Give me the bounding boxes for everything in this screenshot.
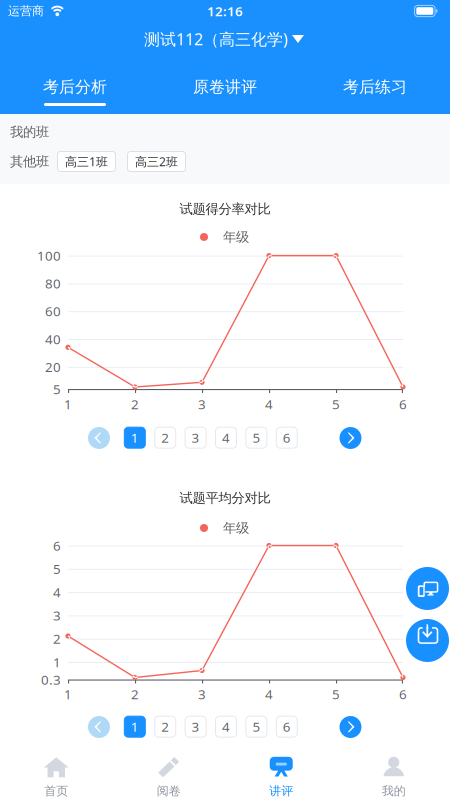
staticText: 4: [265, 395, 273, 413]
button[interactable]: 6: [276, 716, 297, 737]
button[interactable]: 上一页: [88, 716, 110, 738]
staticText: 4: [222, 429, 230, 446]
button[interactable]: 高三2班: [127, 151, 185, 171]
staticText: 1: [131, 429, 139, 446]
staticText: 1: [53, 653, 61, 671]
staticText: 2: [161, 718, 169, 735]
button[interactable]: 5: [246, 716, 267, 737]
staticText: 0.3: [41, 671, 61, 688]
staticText: 高三1班: [65, 153, 108, 169]
staticText: 3: [192, 429, 200, 446]
button[interactable]: 2: [155, 427, 176, 448]
staticText: 5: [53, 380, 61, 398]
button[interactable]: 下载: [406, 619, 449, 662]
staticText: 3: [53, 606, 61, 624]
staticText: 1: [131, 718, 139, 735]
staticText: 5: [332, 685, 340, 703]
button[interactable]: 6: [276, 427, 297, 448]
button[interactable]: 5: [246, 427, 267, 448]
staticText: 我的班: [10, 124, 49, 140]
button[interactable]: 我的: [337, 742, 450, 800]
staticText: 4: [222, 718, 230, 735]
button[interactable]: 3: [185, 427, 206, 448]
staticText: 5: [252, 429, 260, 446]
staticText: 2: [131, 685, 139, 703]
button[interactable]: 1: [124, 427, 145, 448]
staticText: 其他班: [10, 153, 49, 170]
button[interactable]: 首页: [0, 742, 112, 800]
staticText: 80: [45, 274, 61, 292]
button[interactable]: 讲评: [225, 742, 337, 800]
staticText: 试题得分率对比: [179, 201, 270, 217]
button[interactable]: 投屏: [406, 567, 449, 610]
staticText: 3: [192, 718, 200, 735]
staticText: 60: [45, 302, 61, 320]
staticText: 试题平均分对比: [179, 490, 270, 506]
staticText: 考后练习: [343, 77, 407, 97]
button[interactable]: 考后分析: [0, 58, 150, 114]
staticText: 1: [64, 395, 72, 413]
button[interactable]: 2: [155, 716, 176, 737]
staticText: 我的: [382, 784, 406, 798]
staticText: 4: [265, 685, 273, 703]
staticText: 6: [283, 718, 291, 735]
staticText: 6: [399, 685, 407, 703]
staticText: 测试112（高三化学): [144, 28, 288, 50]
staticText: 讲评: [269, 784, 293, 798]
button[interactable]: 高三1班: [57, 151, 115, 171]
staticText: 3: [198, 685, 206, 703]
staticText: 5: [252, 718, 260, 735]
staticText: 考后分析: [43, 77, 107, 97]
staticText: 100: [37, 247, 61, 264]
staticText: 20: [45, 358, 61, 376]
staticText: 1: [64, 685, 72, 703]
button[interactable]: 3: [185, 716, 206, 737]
staticText: 运营商: [8, 4, 44, 18]
button[interactable]: 测试112（高三化学): [0, 22, 450, 58]
button[interactable]: 上一页: [88, 427, 110, 449]
button[interactable]: 4: [215, 427, 236, 448]
button[interactable]: 下一页: [339, 716, 361, 738]
staticText: 5: [53, 560, 61, 578]
staticText: 12:16: [207, 2, 243, 20]
staticText: 2: [131, 395, 139, 413]
staticText: 高三2班: [135, 153, 178, 169]
staticText: 6: [399, 395, 407, 413]
staticText: 2: [161, 429, 169, 446]
button[interactable]: 原卷讲评: [150, 58, 300, 114]
staticText: 5: [332, 395, 340, 413]
staticText: 原卷讲评: [193, 77, 257, 97]
staticText: 40: [45, 330, 61, 348]
button[interactable]: 下一页: [339, 427, 361, 449]
staticText: 年级: [223, 520, 249, 536]
staticText: 6: [283, 429, 291, 446]
button[interactable]: 阅卷: [112, 742, 225, 800]
button[interactable]: 4: [215, 716, 236, 737]
staticText: 阅卷: [157, 784, 181, 798]
staticText: 6: [53, 537, 61, 554]
staticText: 首页: [44, 784, 68, 798]
staticText: 年级: [223, 229, 249, 245]
staticText: 2: [53, 630, 61, 647]
staticText: 4: [53, 583, 61, 601]
button[interactable]: 1: [124, 716, 145, 737]
button[interactable]: 考后练习: [300, 58, 450, 114]
staticText: 3: [198, 395, 206, 413]
